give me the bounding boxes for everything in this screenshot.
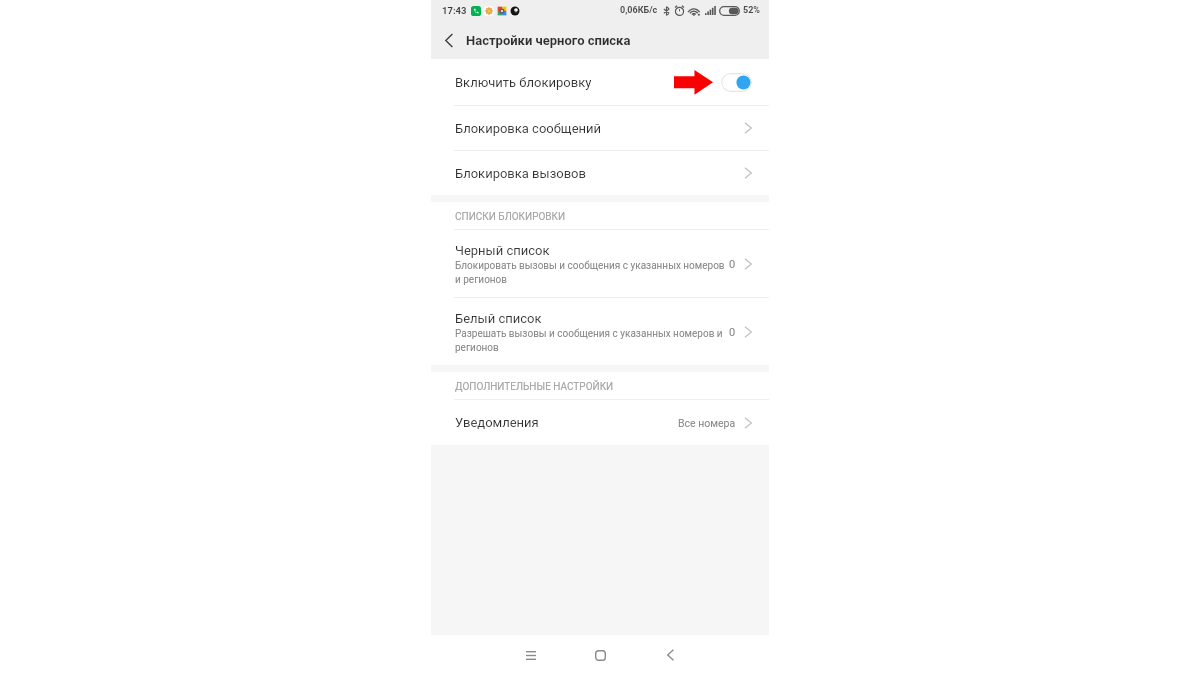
staticText: Блокировать вызовы и сообщения с указанн…: [455, 260, 727, 285]
button[interactable]: Назад: [650, 635, 690, 675]
button[interactable]: Белый список: [431, 298, 769, 365]
staticText: 17:43: [442, 5, 467, 16]
button[interactable]: Уведомления: [431, 400, 769, 445]
button[interactable]: Назад: [431, 21, 466, 59]
staticText: Все номера: [678, 417, 736, 429]
staticText: 0,06КБ/c: [620, 5, 658, 16]
button[interactable]: Блокировка вызовов: [431, 151, 769, 195]
staticText: ДОПОЛНИТЕЛЬНЫЕ НАСТРОЙКИ: [455, 381, 614, 393]
staticText: Разрешать вызовы и сообщения с указанных…: [455, 328, 727, 353]
staticText: Уведомления: [455, 415, 539, 430]
button[interactable]: Включить блокировку: [721, 73, 752, 92]
staticText: Блокировка вызовов: [455, 166, 586, 181]
staticText: СПИСКИ БЛОКИРОВКИ: [455, 211, 566, 223]
staticText: Настройки черного списка: [466, 33, 631, 48]
staticText: Включить блокировку: [455, 75, 592, 90]
button[interactable]: Последние приложения: [511, 635, 551, 675]
staticText: Черный список: [455, 243, 550, 258]
staticText: 0: [729, 258, 736, 271]
button[interactable]: Включить блокировку: [431, 59, 769, 105]
staticText: 0: [729, 326, 736, 339]
button[interactable]: Блокировка сообщений: [431, 106, 769, 150]
button[interactable]: Главный экран: [580, 635, 620, 675]
staticText: Блокировка сообщений: [455, 121, 602, 136]
staticText: Белый список: [455, 311, 542, 326]
staticText: 52%: [743, 5, 760, 16]
button[interactable]: Черный список: [431, 230, 769, 297]
